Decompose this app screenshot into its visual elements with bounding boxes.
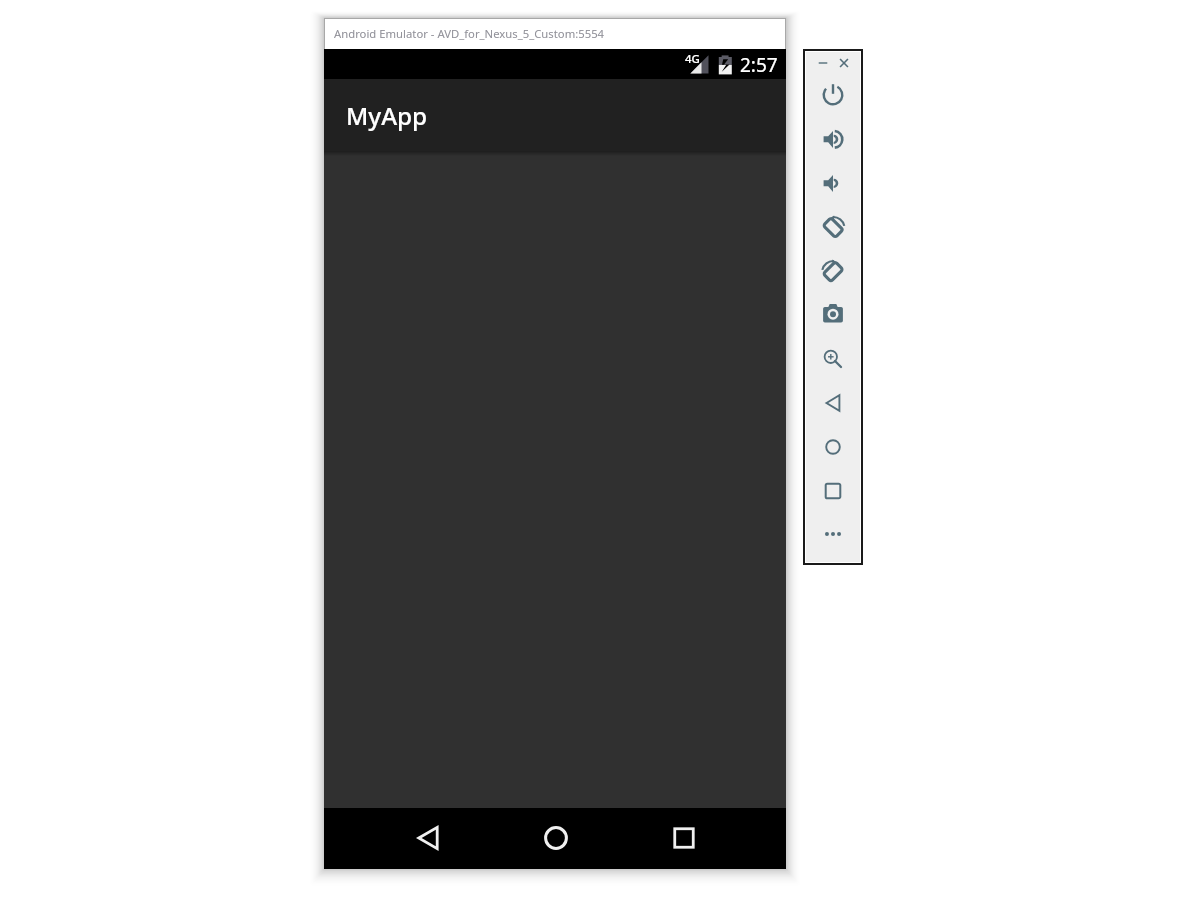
staticText: 4G <box>685 51 700 67</box>
button[interactable]: Power <box>815 77 851 113</box>
button[interactable]: Home <box>532 814 580 862</box>
button[interactable]: More <box>815 516 851 552</box>
button[interactable]: MyApp <box>324 79 786 151</box>
button[interactable]: Back <box>404 814 452 862</box>
button[interactable]: Volume up <box>815 121 851 157</box>
button[interactable]: Volume down <box>815 165 851 201</box>
button[interactable]: Rotate left <box>815 209 851 245</box>
button[interactable]: Minimize <box>813 53 833 73</box>
button[interactable]: Take screenshot <box>815 296 851 332</box>
staticText: 2:57 <box>740 52 778 78</box>
button[interactable]: Overview <box>815 473 851 509</box>
button[interactable]: Close <box>834 53 854 73</box>
button[interactable]: Back <box>815 385 851 421</box>
staticText: MyApp <box>346 99 428 132</box>
button[interactable]: Recent apps <box>660 814 708 862</box>
staticText: Android Emulator - AVD_for_Nexus_5_Custo… <box>334 26 605 41</box>
button[interactable]: Zoom <box>815 341 851 377</box>
button[interactable]: Rotate right <box>815 253 851 289</box>
button[interactable]: Android Emulator - AVD_for_Nexus_5_Custo… <box>325 19 785 49</box>
button[interactable]: Home <box>815 429 851 465</box>
